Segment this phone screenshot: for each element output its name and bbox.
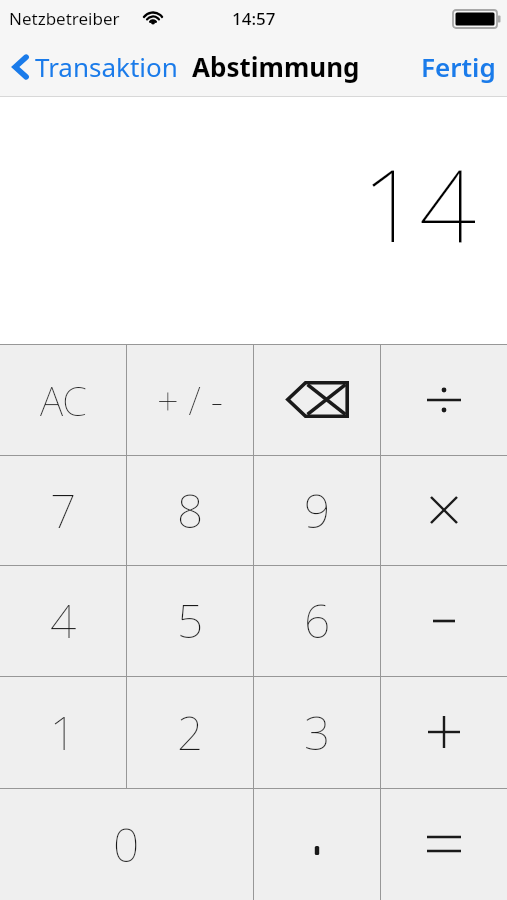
staticText: 0: [113, 813, 140, 876]
button[interactable]: Backspace: [254, 344, 380, 455]
button[interactable]: 2: [127, 676, 253, 788]
staticText: 1: [50, 701, 77, 764]
staticText: Netzbetreiber: [9, 7, 120, 30]
staticText: Abstimmung: [192, 49, 360, 84]
staticText: 5: [177, 589, 204, 652]
button[interactable]: Decimal point: [254, 788, 380, 900]
button[interactable]: Plus: [381, 676, 507, 788]
button[interactable]: Transaktion: [0, 41, 184, 92]
staticText: 8: [177, 479, 204, 542]
staticText: Fertig: [421, 49, 496, 84]
staticText: Transaktion: [35, 49, 178, 84]
button[interactable]: Fertig: [409, 41, 507, 92]
button[interactable]: AC: [0, 344, 126, 455]
button[interactable]: Multiply: [381, 455, 507, 565]
button[interactable]: 6: [254, 565, 380, 676]
button[interactable]: Equals: [381, 788, 507, 900]
button[interactable]: 5: [127, 565, 253, 676]
button[interactable]: 9: [254, 455, 380, 565]
staticText: + / -: [157, 374, 223, 426]
button[interactable]: + / -: [127, 344, 253, 455]
staticText: 3: [304, 701, 331, 764]
staticText: 9: [304, 479, 331, 542]
button[interactable]: Divide: [381, 344, 507, 455]
button[interactable]: 4: [0, 565, 126, 676]
staticText: 14: [362, 135, 476, 271]
staticText: 14:57: [232, 7, 276, 30]
button[interactable]: 7: [0, 455, 126, 565]
button[interactable]: 1: [0, 676, 126, 788]
staticText: 2: [177, 701, 204, 764]
staticText: 4: [50, 589, 77, 652]
button[interactable]: 0: [0, 788, 253, 900]
staticText: 7: [50, 479, 77, 542]
staticText: 6: [304, 589, 331, 652]
button[interactable]: 3: [254, 676, 380, 788]
button[interactable]: Minus: [381, 565, 507, 676]
staticText: AC: [40, 373, 87, 427]
button[interactable]: 8: [127, 455, 253, 565]
